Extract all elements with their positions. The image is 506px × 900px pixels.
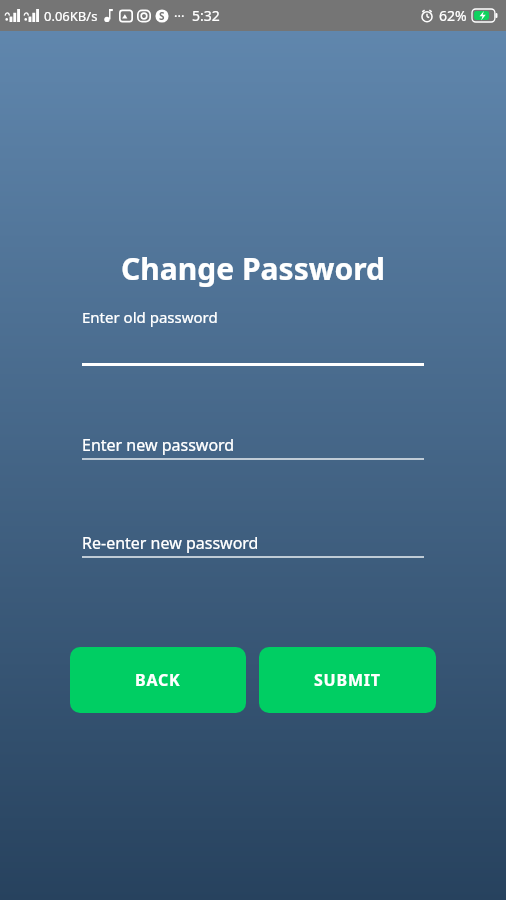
staticText: Change Password: [0, 248, 506, 289]
staticText: S: [159, 9, 165, 23]
staticText: Enter new password: [82, 434, 235, 456]
button[interactable]: Enter old password: [82, 307, 424, 366]
staticText: 62%: [439, 6, 467, 25]
staticText: ···: [174, 7, 185, 25]
staticText: BACK: [135, 669, 181, 691]
button[interactable]: Enter new password: [82, 434, 424, 460]
staticText: Enter old password: [82, 307, 218, 327]
button[interactable]: SUBMIT: [259, 647, 436, 713]
staticText: 0.06KB/s: [44, 7, 98, 25]
button[interactable]: BACK: [70, 647, 246, 713]
staticText: Re-enter new password: [82, 532, 259, 554]
staticText: 5:32: [192, 6, 220, 25]
button[interactable]: Re-enter new password: [82, 532, 424, 558]
staticText: SUBMIT: [314, 669, 381, 691]
